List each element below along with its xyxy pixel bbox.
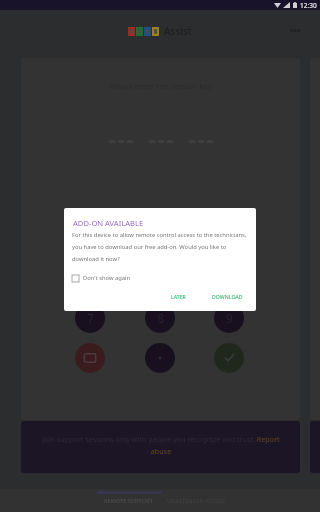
staticText: Don't show again [83,274,131,282]
staticText: REMOTE SUPPORT [104,497,153,505]
button[interactable]: 2 [145,223,175,253]
button[interactable]: 8 [145,303,175,333]
staticText: Join support sessions only with people y… [41,434,281,456]
staticText: LATER [171,293,186,300]
staticText: 4 [87,270,94,286]
staticText: 7 [87,310,94,326]
staticText: 3 [226,230,233,246]
staticText: 8 [157,310,164,326]
button[interactable]: 7 [75,303,105,333]
staticText: UNATTENDED ACCESS [167,497,226,505]
button[interactable]: 4 [75,263,105,293]
button[interactable]: Connect [214,343,244,373]
button[interactable]: Zero [145,343,175,373]
staticText: For this device to allow remote control … [72,231,250,263]
button[interactable]: Don't show again [72,272,131,284]
button[interactable]: DOWNLOAD [208,290,247,303]
button[interactable]: 1 [75,223,105,253]
button[interactable]: LATER [166,290,191,303]
staticText: 9 [226,310,233,326]
button[interactable]: 9 [214,303,244,333]
staticText: 12:30 [300,1,317,10]
staticText: 1 [87,230,94,246]
staticText: Assist [164,24,192,38]
staticText: 2 [157,230,164,246]
button[interactable]: REMOTE SUPPORT [96,489,160,512]
button[interactable]: 3 [214,223,244,253]
staticText: DOWNLOAD [212,293,243,300]
staticText: ADD-ON AVAILABLE [73,218,144,228]
button[interactable]: Backspace [75,343,105,373]
